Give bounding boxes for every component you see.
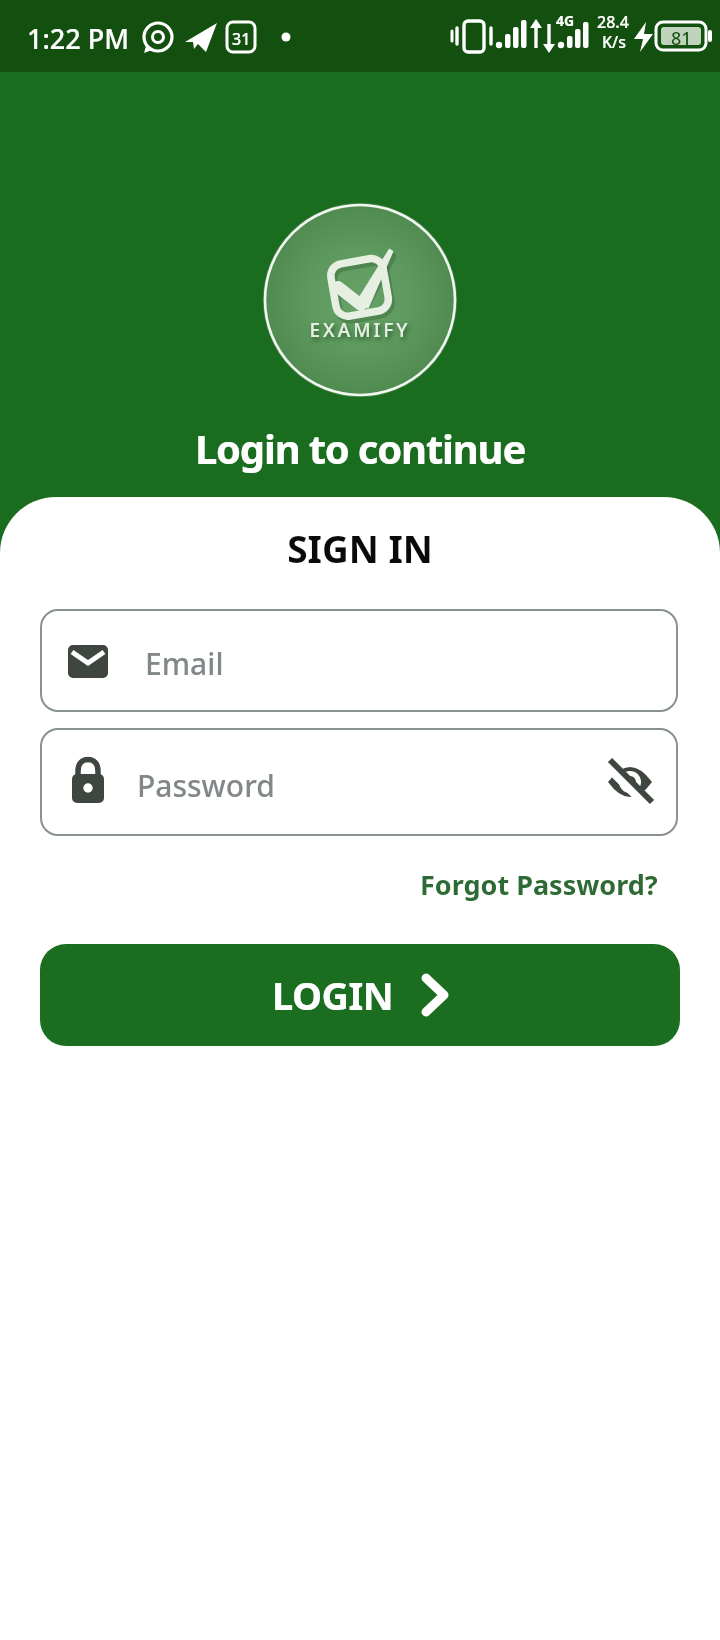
staticText: SIGN IN [0, 523, 720, 573]
staticText: 81 [671, 26, 692, 51]
staticText: K/s [602, 31, 627, 53]
button[interactable]: LOGIN [40, 944, 680, 1046]
button[interactable]: Email [40, 609, 678, 712]
button[interactable]: Forgot Password? [380, 860, 680, 908]
staticText: 28.4 [597, 11, 629, 33]
button[interactable] [596, 750, 656, 810]
staticText: Login to continue [0, 421, 720, 475]
staticText: Forgot Password? [420, 866, 658, 903]
staticText: Email [145, 643, 224, 684]
staticText: 1:22 PM [27, 20, 129, 57]
staticText: 4G [556, 11, 575, 30]
staticText: LOGIN [272, 969, 394, 1021]
staticText: 31 [232, 28, 251, 50]
staticText: Password [137, 765, 275, 806]
staticText: EXAMIFY [0, 317, 720, 343]
button[interactable]: Password [40, 728, 678, 836]
